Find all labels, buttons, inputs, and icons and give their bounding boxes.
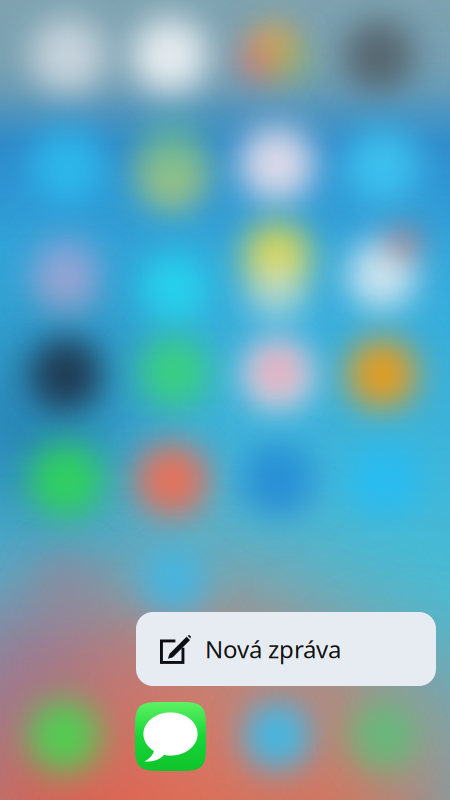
button[interactable]: Nová zpráva [136,612,436,686]
button[interactable]: Messages [135,702,206,771]
staticText: Nová zpráva [205,633,341,665]
